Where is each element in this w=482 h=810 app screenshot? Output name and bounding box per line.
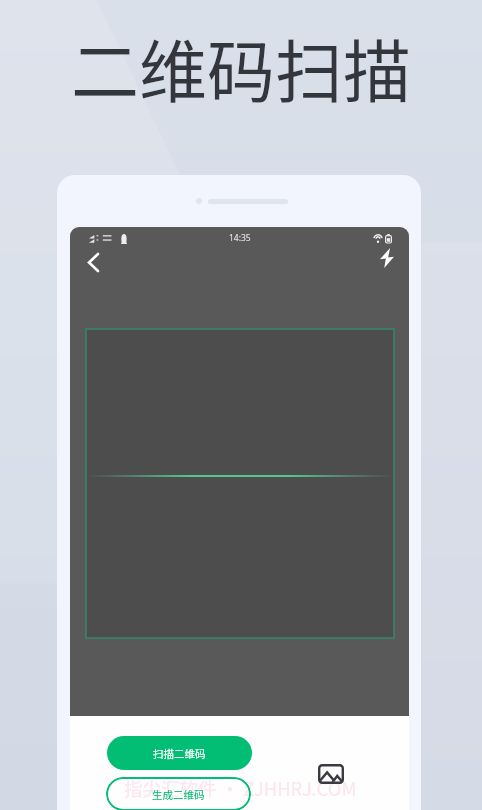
button[interactable]: Toggle flashlight xyxy=(367,238,407,278)
button[interactable]: Back xyxy=(72,241,114,283)
button[interactable]: 生成二维码 xyxy=(106,777,251,810)
staticText: 指尖汇软件 · ZJHHRJ.COM xyxy=(124,775,357,802)
button[interactable]: 扫描二维码 xyxy=(107,736,252,770)
staticText: 生成二维码 xyxy=(152,787,205,802)
staticText: 二维码扫描 xyxy=(71,18,412,116)
staticText: 扫描二维码 xyxy=(153,746,206,761)
button[interactable]: Pick image from gallery xyxy=(311,754,351,794)
staticText: 14:35 xyxy=(229,232,251,244)
